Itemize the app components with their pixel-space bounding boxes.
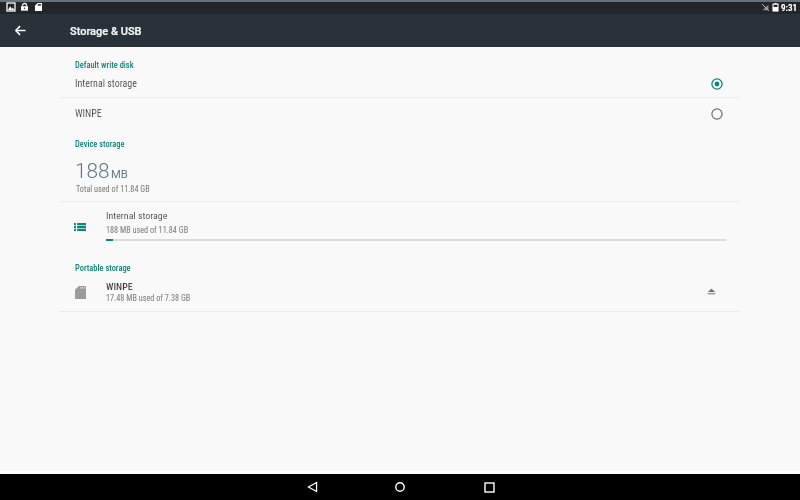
button[interactable]: Back [300, 475, 324, 499]
button[interactable]: Recent apps [477, 475, 501, 499]
button[interactable]: WINPE [0, 100, 800, 127]
button[interactable]: Internal storage [0, 202, 800, 245]
staticText: Default write disk [75, 60, 134, 70]
staticText: WINPE [75, 108, 102, 120]
staticText: Storage & USB [70, 25, 142, 38]
button[interactable]: Eject [701, 281, 721, 301]
staticText: Internal storage [106, 210, 168, 222]
button[interactable]: Navigate up [9, 19, 32, 42]
staticText: 17.48 MB used of 7.38 GB [106, 293, 191, 303]
button[interactable]: Internal storage [0, 70, 800, 97]
staticText: Device storage [75, 139, 125, 149]
staticText: Internal storage [75, 78, 137, 90]
staticText: WINPE [106, 281, 133, 293]
staticText: Portable storage [75, 263, 131, 273]
staticText: 188 [75, 159, 110, 183]
staticText: MB [111, 168, 128, 181]
staticText: Total used of 11.84 GB [76, 184, 150, 194]
staticText: 9:31 [781, 2, 798, 13]
staticText: 188 MB used of 11.84 GB [106, 225, 189, 235]
button[interactable]: Home [388, 475, 412, 499]
button[interactable]: WINPE [0, 274, 800, 311]
